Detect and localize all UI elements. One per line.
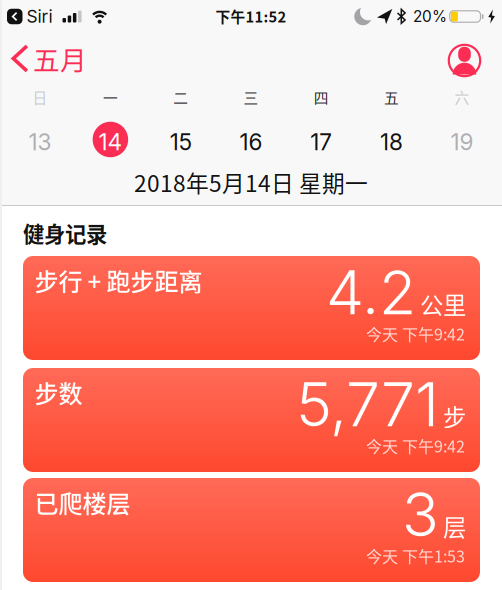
button[interactable]: 五月 — [11, 39, 87, 78]
staticText: 六 — [454, 86, 469, 108]
staticText: 公里 — [420, 287, 466, 321]
staticText: 步行 + 跑步距离 — [34, 263, 202, 298]
staticText: 20% — [413, 7, 447, 26]
staticText: 今天 下午9:42 — [366, 322, 465, 345]
staticText: 15 — [170, 128, 192, 156]
staticText: 五 — [384, 86, 399, 108]
button[interactable]: 步行 + 跑步距离 — [23, 256, 480, 360]
staticText: 三 — [243, 86, 258, 108]
button[interactable]: 13 — [5, 110, 75, 172]
staticText: 层 — [443, 509, 466, 543]
staticText: 3 — [402, 477, 439, 551]
staticText: 四 — [314, 86, 329, 108]
staticText: 健身记录 — [23, 217, 107, 248]
staticText: 18 — [380, 128, 403, 156]
staticText: Siri — [26, 6, 52, 27]
staticText: 2018年5月14日 星期一 — [134, 166, 368, 198]
staticText: 下午11:52 — [215, 5, 286, 27]
button[interactable]: 16 — [216, 110, 286, 172]
button[interactable]: 15 — [145, 110, 216, 172]
staticText: 今天 下午1:53 — [366, 544, 465, 567]
staticText: 今天 下午9:42 — [366, 434, 465, 457]
staticText: 16 — [239, 128, 262, 156]
button[interactable]: 19 — [427, 110, 497, 172]
staticText: 14 — [98, 128, 122, 156]
staticText: 已爬楼层 — [34, 485, 130, 520]
staticText: 步数 — [34, 375, 82, 410]
staticText: 19 — [450, 128, 473, 156]
button[interactable] — [447, 41, 481, 75]
staticText: 17 — [310, 128, 332, 156]
staticText: 五月 — [33, 39, 87, 78]
button[interactable]: 步数 — [23, 368, 480, 472]
staticText: 4.2 — [326, 255, 416, 329]
button[interactable]: Siri — [7, 6, 52, 27]
button[interactable]: 18 — [356, 110, 427, 172]
staticText: 一 — [103, 86, 118, 108]
staticText: 二 — [173, 86, 188, 108]
staticText: 步 — [443, 399, 466, 433]
button[interactable]: 14 — [75, 110, 145, 172]
staticText: 13 — [29, 128, 52, 156]
staticText: 5,771 — [296, 367, 439, 441]
button[interactable]: 17 — [286, 110, 356, 172]
staticText: 日 — [33, 86, 48, 108]
button[interactable]: 已爬楼层 — [23, 478, 480, 582]
